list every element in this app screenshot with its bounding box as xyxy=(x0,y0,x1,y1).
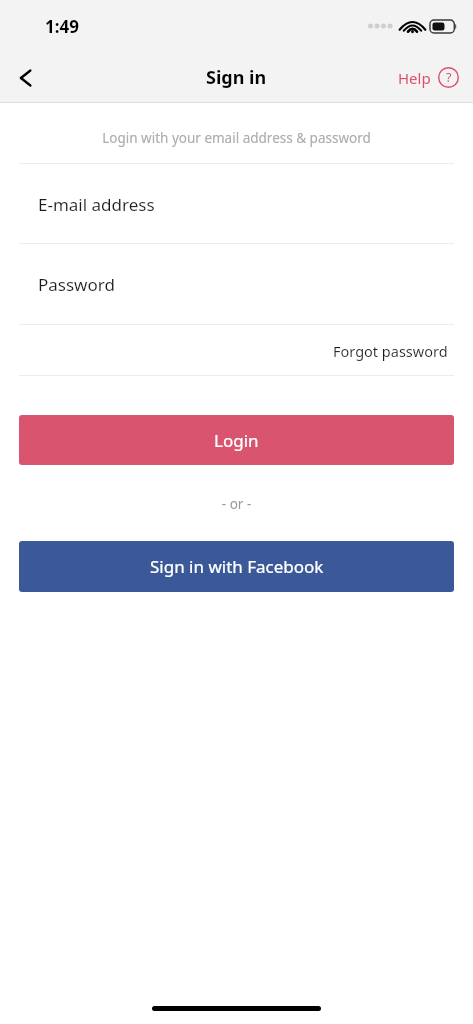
staticText: Login with your email address & password xyxy=(0,129,473,147)
staticText: 1:49 xyxy=(45,15,79,38)
staticText: Sign in with Facebook xyxy=(150,555,324,578)
staticText: Help xyxy=(398,68,431,88)
staticText: - or - xyxy=(0,495,473,513)
staticText: E-mail address xyxy=(38,193,155,216)
button[interactable]: Forgot password xyxy=(327,335,454,367)
button[interactable]: E-mail address xyxy=(0,164,473,244)
button[interactable]: Login xyxy=(19,415,454,465)
staticText: Login xyxy=(214,429,259,452)
staticText: ? xyxy=(446,69,452,86)
button[interactable]: Back xyxy=(0,52,52,103)
button[interactable]: Help xyxy=(395,61,462,94)
button[interactable]: Password xyxy=(0,244,473,325)
button[interactable]: Sign in with Facebook xyxy=(19,541,454,592)
staticText: Password xyxy=(38,273,115,296)
staticText: Sign in xyxy=(206,65,267,90)
staticText: Forgot password xyxy=(333,341,448,361)
